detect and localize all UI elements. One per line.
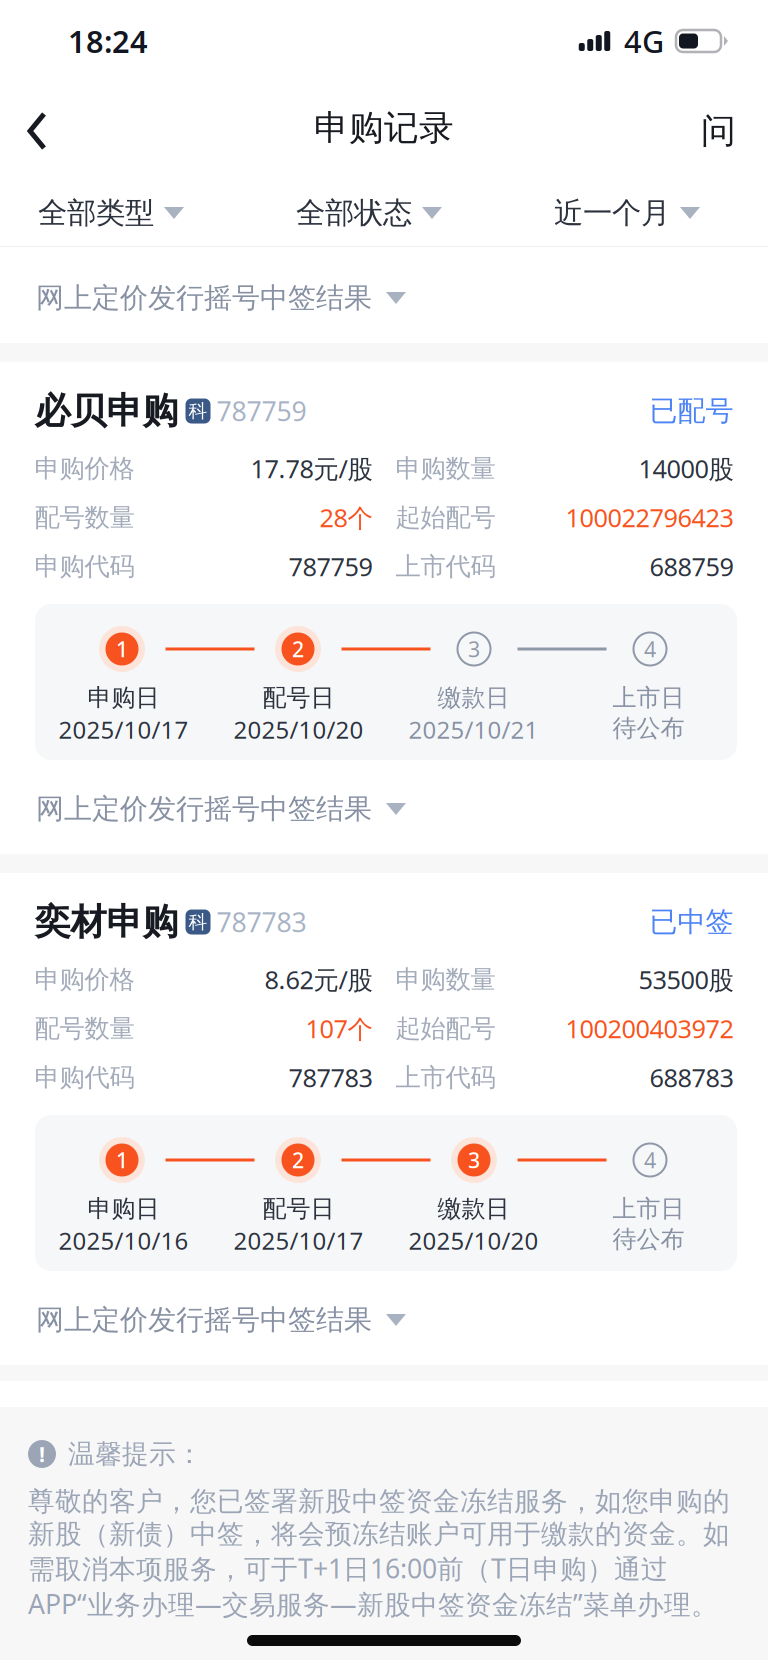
staticText: 待公布	[612, 713, 684, 743]
staticText: 科	[188, 399, 207, 422]
button[interactable]: 已中签	[649, 905, 733, 939]
staticText: 网上定价发行摇号中签结果	[36, 792, 372, 826]
staticText: 787783	[288, 1061, 372, 1094]
staticText: !	[39, 1440, 45, 1468]
staticText: 申购日	[87, 683, 159, 712]
staticText: 上市代码	[395, 1062, 495, 1093]
staticText: 2025/10/17	[233, 1224, 363, 1256]
staticText: 网上定价发行摇号中签结果	[36, 1303, 372, 1337]
button[interactable]: 全部状态	[296, 180, 442, 246]
staticText: 已中签	[649, 905, 733, 939]
staticText: 配号数量	[34, 1013, 134, 1044]
staticText: 申购数量	[395, 453, 495, 484]
button[interactable]: 已配号	[649, 394, 733, 428]
staticText: 2025/10/20	[233, 713, 363, 745]
button[interactable]: 问	[676, 93, 736, 169]
staticText: 2025/10/17	[58, 713, 188, 745]
staticText: 配号日	[262, 1194, 334, 1223]
staticText: 8.62元/股	[264, 963, 372, 996]
staticText: 53500股	[638, 963, 733, 996]
staticText: 2025/10/20	[408, 1224, 538, 1256]
staticText: 3	[468, 1146, 480, 1174]
staticText: 科	[188, 910, 207, 933]
staticText: 申购日	[87, 1194, 159, 1223]
staticText: 问	[701, 110, 736, 152]
button[interactable]: 网上定价发行摇号中签结果	[0, 261, 768, 343]
staticText: 4	[644, 635, 656, 663]
staticText: 申购代码	[34, 1062, 134, 1093]
staticText: 787759	[288, 550, 372, 583]
staticText: 申购代码	[34, 551, 134, 582]
staticText: 28个	[319, 501, 372, 534]
staticText: 2	[292, 635, 304, 663]
staticText: 全部状态	[296, 195, 412, 231]
staticText: 申购价格	[34, 964, 134, 995]
staticText: 缴款日	[437, 683, 509, 712]
staticText: 2025/10/16	[58, 1224, 188, 1256]
staticText: 上市日	[612, 1194, 684, 1223]
staticText: 100200403972	[565, 1012, 733, 1045]
staticText: 已配号	[649, 394, 733, 428]
staticText: 奕材申购	[34, 900, 178, 944]
button[interactable]: Back	[26, 96, 86, 166]
staticText: 1	[116, 635, 128, 663]
staticText: 缴款日	[437, 1194, 509, 1223]
staticText: 配号数量	[34, 502, 134, 533]
staticText: 起始配号	[395, 1013, 495, 1044]
staticText: 申购价格	[34, 453, 134, 484]
staticText: 3	[468, 635, 480, 663]
staticText: 温馨提示：	[68, 1438, 203, 1470]
button[interactable]: 近一个月	[554, 180, 700, 246]
staticText: 18:24	[68, 21, 148, 61]
staticText: 787759	[216, 393, 306, 429]
staticText: 申购数量	[395, 964, 495, 995]
staticText: 待公布	[612, 1224, 684, 1254]
staticText: 上市日	[612, 683, 684, 712]
staticText: 107个	[305, 1012, 372, 1045]
staticText: 17.78元/股	[250, 452, 372, 485]
staticText: 4G	[624, 21, 664, 61]
staticText: 787783	[216, 904, 306, 940]
staticText: 起始配号	[395, 502, 495, 533]
staticText: 14000股	[638, 452, 733, 485]
staticText: 100022796423	[565, 501, 733, 534]
button[interactable]: 网上定价发行摇号中签结果	[0, 1283, 768, 1365]
staticText: 2025/10/21	[408, 713, 538, 745]
staticText: 1	[116, 1146, 128, 1174]
button[interactable]: 全部类型	[38, 180, 184, 246]
staticText: 全部类型	[38, 195, 154, 231]
staticText: 688783	[649, 1061, 733, 1094]
staticText: 配号日	[262, 683, 334, 712]
staticText: 尊敬的客户，您已签署新股中签资金冻结服务，如您申购的新股（新债）中签，将会预冻结…	[28, 1485, 730, 1621]
staticText: 申购记录	[314, 107, 454, 149]
staticText: 近一个月	[554, 195, 670, 231]
staticText: 688759	[649, 550, 733, 583]
staticText: 必贝申购	[34, 389, 178, 433]
button[interactable]: 网上定价发行摇号中签结果	[0, 772, 768, 854]
staticText: 网上定价发行摇号中签结果	[36, 281, 372, 315]
staticText: 上市代码	[395, 551, 495, 582]
staticText: 4	[644, 1146, 656, 1174]
staticText: 2	[292, 1146, 304, 1174]
